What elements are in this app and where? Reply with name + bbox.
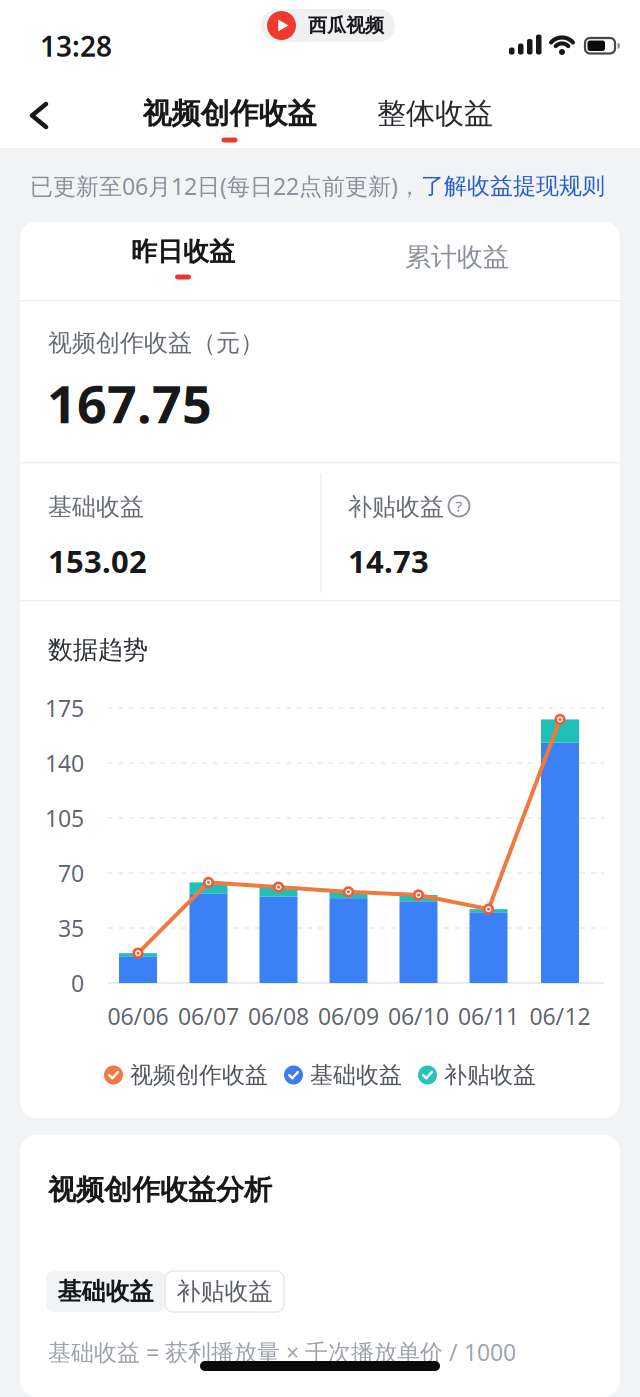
staticText: 06/06 (107, 1000, 168, 1032)
staticText: 167.75 (47, 368, 212, 438)
button[interactable]: 了解收益提现规则 (421, 171, 605, 200)
button[interactable]: 整体收益 (335, 93, 535, 145)
staticText: 了解收益提现规则 (421, 171, 605, 200)
staticText: 昨日收益 (131, 235, 235, 268)
staticText: 06/11 (458, 1000, 519, 1032)
button[interactable]: 累计收益 (307, 222, 607, 292)
staticText: 基础收益 (48, 492, 144, 522)
staticText: 基础收益 (310, 1060, 402, 1089)
staticText: 06/09 (318, 1000, 379, 1032)
button[interactable]: 补贴收益 (165, 1271, 284, 1312)
staticText: 补贴收益 (176, 1276, 272, 1307)
staticText: 已更新至06月12日(每日22点前更新)， (30, 170, 421, 202)
button[interactable]: 昨日收益 (33, 222, 333, 292)
staticText: 153.02 (48, 540, 147, 582)
button[interactable]: 返回 (20, 91, 62, 140)
staticText: 0 (71, 967, 84, 999)
staticText: 06/12 (529, 1000, 590, 1032)
staticText: 视频创作收益分析 (48, 1172, 272, 1208)
button[interactable]: 西瓜视频 (261, 9, 395, 42)
staticText: 14.73 (348, 540, 429, 582)
staticText: 数据趋势 (48, 634, 148, 666)
staticText: 西瓜视频 (308, 13, 384, 37)
staticText: 累计收益 (405, 241, 509, 273)
staticText: 105 (45, 802, 84, 834)
staticText: 视频创作收益 (142, 95, 316, 132)
staticText: 13:28 (40, 27, 112, 65)
staticText: 06/10 (388, 1000, 449, 1032)
staticText: 整体收益 (377, 95, 493, 132)
staticText: 35 (58, 912, 84, 944)
button[interactable]: 视频创作收益 (109, 93, 349, 145)
staticText: 70 (58, 857, 84, 889)
staticText: 补贴收益 (444, 1060, 536, 1089)
staticText: 视频创作收益（元） (48, 328, 264, 358)
button[interactable]: 基础收益 (46, 1271, 165, 1312)
button[interactable]: 补贴收益说明 (448, 495, 470, 517)
staticText: 基础收益 (57, 1276, 153, 1307)
staticText: 06/07 (178, 1000, 239, 1032)
staticText: 140 (45, 747, 84, 779)
staticText: 视频创作收益 (130, 1060, 268, 1089)
staticText: 06/08 (248, 1000, 309, 1032)
staticText: 补贴收益 (348, 492, 444, 522)
staticText: 175 (45, 692, 84, 724)
staticText: ? (455, 496, 462, 516)
staticText: 基础收益 = 获利播放量 × 千次播放单价 / 1000 (48, 1336, 516, 1368)
